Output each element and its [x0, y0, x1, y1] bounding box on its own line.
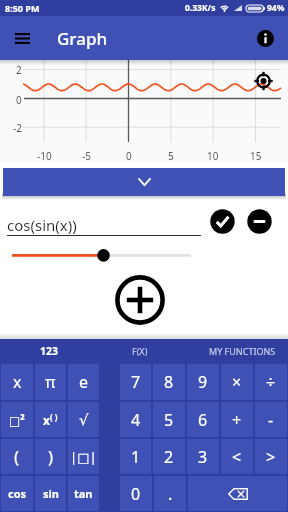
staticText: F(X) [132, 345, 148, 357]
staticText: 5 [168, 149, 174, 163]
staticText: tan [74, 486, 93, 501]
button[interactable]: F(X) [80, 339, 200, 363]
staticText: ÷ [266, 371, 276, 393]
button[interactable]: > [255, 439, 287, 474]
button[interactable]: 123 [0, 339, 109, 363]
staticText: 9 [198, 371, 208, 393]
staticText: e [79, 371, 89, 393]
staticText: -5 [82, 149, 91, 163]
staticText: Graph [57, 27, 108, 50]
button[interactable]: |□| [68, 439, 99, 474]
staticText: < [232, 446, 242, 468]
staticText: 2 [16, 63, 22, 77]
button[interactable]: < [221, 439, 253, 474]
button[interactable]: e [68, 364, 99, 400]
button[interactable]: Enable function [209, 208, 235, 234]
staticText: MY FUNCTIONS [209, 345, 276, 357]
staticText: . [168, 483, 173, 505]
button[interactable]: □² [1, 402, 33, 437]
staticText: ( ) [50, 411, 58, 422]
staticText: ) [48, 445, 54, 468]
button[interactable]: sin [35, 476, 66, 511]
button[interactable]: 9 [187, 364, 219, 400]
staticText: √ [79, 411, 89, 428]
staticText: -10 [37, 149, 52, 163]
staticText: 0.33K/s [185, 2, 216, 14]
button[interactable]: √ [68, 402, 99, 437]
button[interactable]: 6 [187, 402, 219, 437]
button[interactable]: x [35, 402, 66, 437]
staticText: 8 [164, 371, 174, 393]
button[interactable]: Open navigation menu [4, 20, 40, 56]
staticText: |□| [70, 448, 97, 466]
button[interactable]: 0 [120, 476, 152, 511]
staticText: cos(sin(x)) [7, 215, 77, 235]
button[interactable]: ) [35, 439, 66, 474]
staticText: + [232, 409, 242, 431]
staticText: × [232, 371, 242, 393]
staticText: 3 [198, 446, 208, 468]
staticText: 1 [131, 446, 141, 468]
staticText: 0 [126, 149, 132, 163]
button[interactable]: ÷ [255, 364, 287, 400]
button[interactable]: cos [1, 476, 33, 511]
button[interactable]: . [154, 476, 186, 511]
staticText: 7 [131, 371, 141, 393]
staticText: 4 [131, 409, 141, 431]
button[interactable]: × [221, 364, 253, 400]
button[interactable]: tan [68, 476, 99, 511]
button[interactable]: x [1, 364, 33, 400]
staticText: -2 [13, 121, 22, 135]
button[interactable]: Add function [115, 275, 165, 325]
staticText: x [13, 371, 22, 393]
button[interactable]: Remove function [246, 208, 272, 234]
button[interactable]: ( [1, 439, 33, 474]
staticText: 15 [250, 149, 262, 163]
staticText: 123 [40, 344, 59, 358]
staticText: 8:50 PM [5, 2, 40, 14]
staticText: 2 [164, 446, 174, 468]
staticText: ( [14, 445, 20, 468]
staticText: x [43, 412, 50, 428]
button[interactable]: 7 [120, 364, 151, 400]
button[interactable]: 1 [120, 439, 151, 474]
button[interactable]: Backspace [188, 476, 287, 511]
button[interactable]: 8 [153, 364, 185, 400]
button[interactable]: 4 [120, 402, 151, 437]
staticText: cos [8, 486, 27, 501]
button[interactable]: cos(sin(x)) [7, 204, 201, 238]
staticText: - [268, 409, 274, 431]
button[interactable]: 2 [153, 439, 185, 474]
button[interactable]: Information [253, 26, 277, 50]
button[interactable]: 3 [187, 439, 219, 474]
staticText: sin [43, 486, 59, 501]
button[interactable]: Collapse graph [3, 168, 285, 196]
staticText: 0 [131, 483, 141, 505]
button[interactable]: π [35, 364, 66, 400]
staticText: π [45, 371, 56, 393]
button[interactable]: + [221, 402, 253, 437]
staticText: > [266, 446, 276, 468]
button[interactable]: MY FUNCTIONS [182, 339, 288, 363]
button[interactable]: 5 [153, 402, 185, 437]
staticText: 10 [207, 149, 219, 163]
staticText: □² [9, 412, 25, 428]
button[interactable]: - [255, 402, 287, 437]
staticText: 6 [198, 409, 208, 431]
staticText: 94% [267, 2, 285, 14]
staticText: 5 [164, 409, 174, 431]
staticText: 0 [16, 93, 22, 107]
